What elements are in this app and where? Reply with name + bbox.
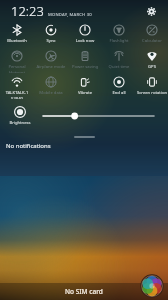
staticText: Calculator [136,38,168,44]
button[interactable]: TALKTALK-1 [0,73,34,99]
button[interactable]: Sync [34,21,68,47]
staticText: 53840 [0,96,34,99]
staticText: Bluetooth [0,38,34,44]
button[interactable]: Personal [0,47,34,73]
staticText: 12:23 [11,2,44,20]
staticText: TALKTALK-1 [0,90,34,96]
button[interactable]: End all [102,73,136,99]
staticText: Personal [0,64,34,70]
button[interactable]: Settings [143,3,159,19]
button[interactable]: Bluetooth [0,21,34,47]
staticText: No SIM card [65,287,103,296]
button[interactable]: Airplane mode [34,47,68,73]
staticText: Hotspot [0,70,34,73]
button[interactable]: Brightness slider [43,111,154,121]
button[interactable]: Power saving [68,47,102,73]
button[interactable]: Flashlight [102,21,136,47]
button[interactable]: GPS [136,47,168,73]
staticText: Sync [34,38,68,44]
staticText: Vibrate [68,90,102,96]
staticText: Flashlight [102,38,136,44]
staticText: No notifications [6,142,51,150]
button[interactable]: Lock now [68,21,102,47]
staticText: Airplane mode [34,64,68,70]
button[interactable]: Mobile data [34,73,68,99]
staticText: Quiet time [102,64,136,70]
button[interactable]: Brightness [3,106,37,126]
staticText: Screen rotation [136,90,168,96]
button[interactable]: Calculator [136,21,168,47]
staticText: End all [102,90,136,96]
staticText: Brightness [3,120,37,126]
staticText: Lock now [68,38,102,44]
button[interactable]: Vibrate [68,73,102,99]
staticText: MONDAY, MARCH 30 [48,12,92,18]
staticText: Power saving [68,64,102,70]
staticText: Mobile data [34,90,68,96]
button[interactable]: Quiet time [102,47,136,73]
other: Logo [139,273,165,299]
button[interactable]: Screen rotation [136,73,168,99]
staticText: GPS [136,64,168,70]
